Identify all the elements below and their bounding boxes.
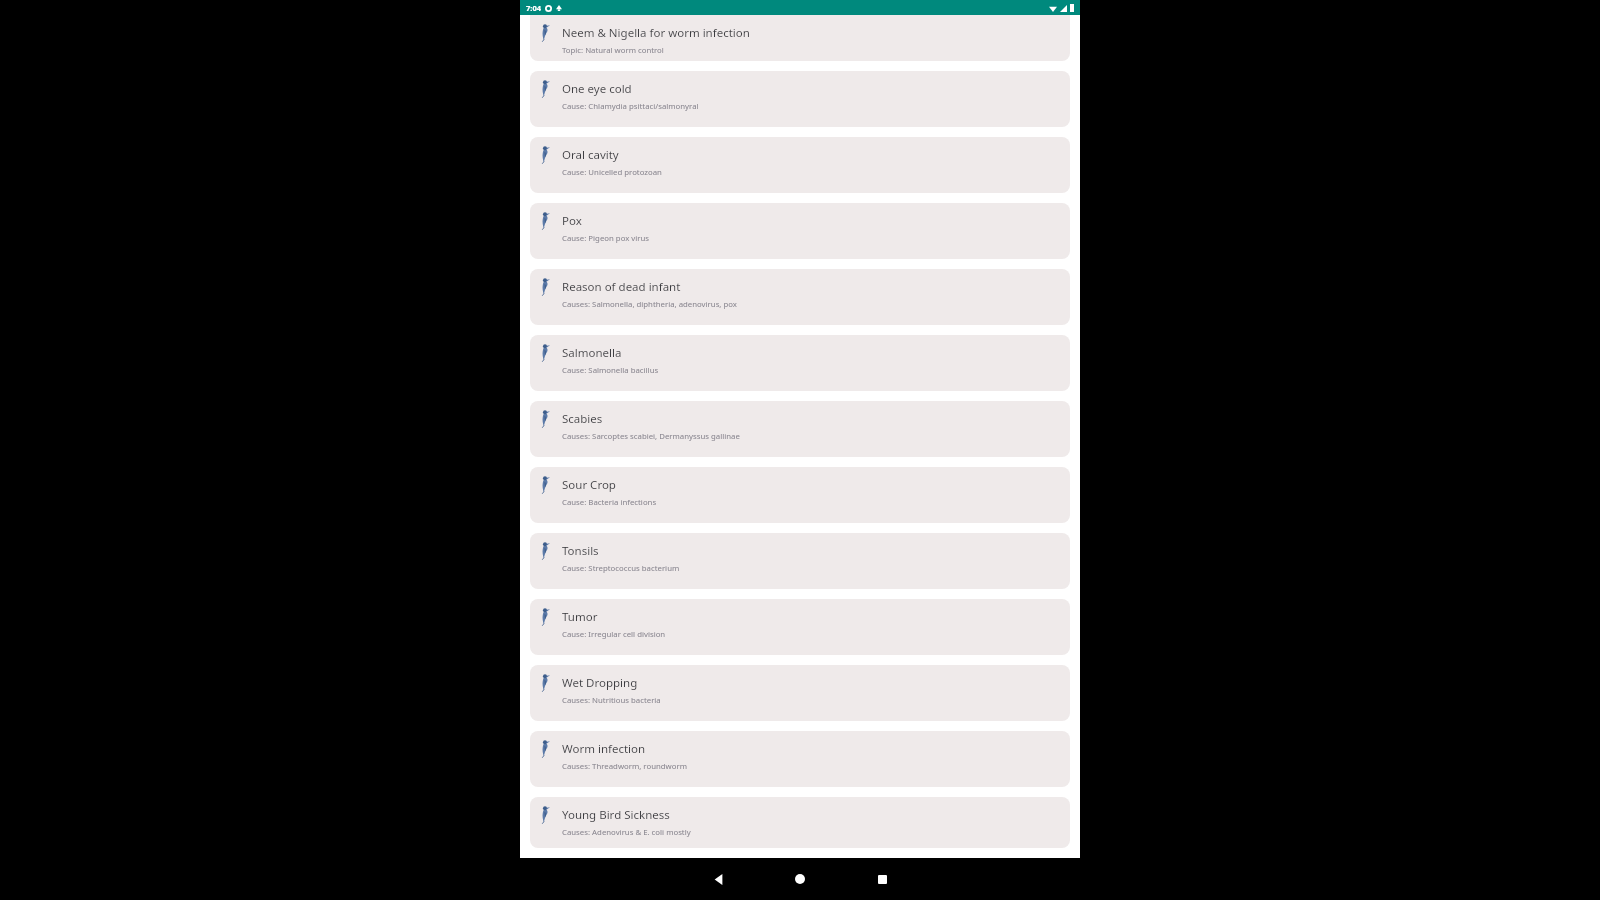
staticText: Worm infection [562,741,646,757]
staticText: Tonsils [562,543,599,559]
staticText: One eye cold [562,81,632,97]
button[interactable]: Worm infection [530,731,1070,787]
staticText: Cause: Salmonella bacillus [562,365,659,376]
staticText: Cause: Unicelled protozoan [562,167,662,178]
staticText: Scabies [562,411,603,427]
button[interactable]: Neem & Nigella for worm infection [530,15,1070,61]
staticText: Causes: Adenovirus & E. coli mostly [562,827,691,838]
staticText: Cause: Streptococcus bacterium [562,563,680,574]
staticText: Wet Dropping [562,675,638,691]
button[interactable]: Scabies [530,401,1070,457]
button[interactable]: Home [787,866,813,892]
staticText: Causes: Sarcoptes scabiei, Dermanyssus g… [562,431,740,442]
staticText: 7:04 [526,3,541,13]
button[interactable]: Recent apps [869,866,895,892]
staticText: Cause: Bacteria infections [562,497,657,508]
staticText: Sour Crop [562,477,616,493]
button[interactable]: Pox [530,203,1070,259]
staticText: Pox [562,213,582,229]
button[interactable]: Wet Dropping [530,665,1070,721]
staticText: Neem & Nigella for worm infection [562,25,750,41]
staticText: Reason of dead infant [562,279,681,295]
button[interactable]: Young Bird Sickness [530,797,1070,848]
button[interactable]: Oral cavity [530,137,1070,193]
staticText: Cause: Chlamydia psittaci/salmonyral [562,101,699,112]
button[interactable]: Sour Crop [530,467,1070,523]
staticText: Young Bird Sickness [562,807,670,823]
button[interactable]: Salmonella [530,335,1070,391]
staticText: Topic: Natural worm control [562,45,664,56]
button[interactable]: Tonsils [530,533,1070,589]
staticText: Oral cavity [562,147,619,163]
button[interactable]: Tumor [530,599,1070,655]
button[interactable]: One eye cold [530,71,1070,127]
staticText: Causes: Threadworm, roundworm [562,761,687,772]
staticText: Causes: Nutritious bacteria [562,695,661,706]
staticText: Cause: Irregular cell division [562,629,666,640]
staticText: Cause: Pigeon pox virus [562,233,650,244]
staticText: Tumor [562,609,598,625]
staticText: Salmonella [562,345,622,361]
button[interactable]: Back [705,866,731,892]
button[interactable]: Reason of dead infant [530,269,1070,325]
staticText: Causes: Salmonella, diphtheria, adenovir… [562,299,737,310]
